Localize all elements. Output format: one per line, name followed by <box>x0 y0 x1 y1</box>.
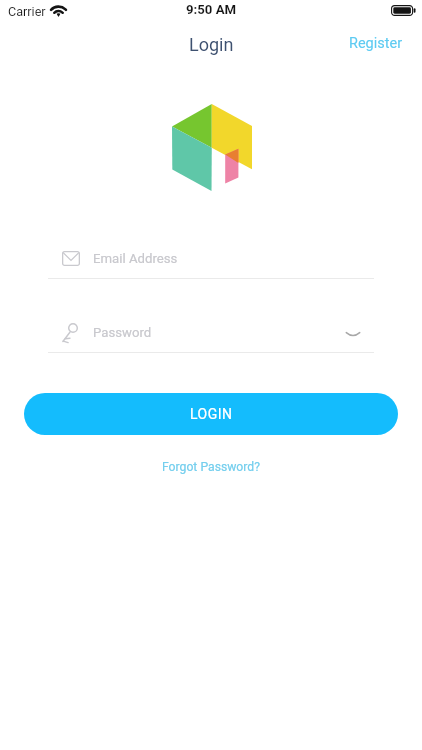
staticText: Register <box>349 35 403 52</box>
staticText: Login <box>189 34 234 55</box>
staticText: Password <box>93 325 152 340</box>
staticText: Email Address <box>93 251 178 266</box>
button[interactable]: Show password <box>338 320 370 348</box>
button[interactable]: Forgot Password? <box>148 454 274 480</box>
button[interactable]: LOGIN <box>24 393 398 435</box>
staticText: LOGIN <box>190 406 233 422</box>
staticText: Carrier <box>8 4 46 19</box>
staticText: 9:50 AM <box>186 2 237 17</box>
staticText: Forgot Password? <box>162 460 260 474</box>
button[interactable]: Password <box>48 318 374 358</box>
button[interactable]: Email Address <box>48 244 374 284</box>
button[interactable]: Register <box>331 25 421 62</box>
